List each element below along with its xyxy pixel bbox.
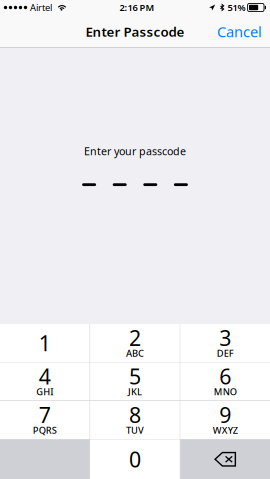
staticText: 0 (129, 445, 141, 473)
staticText: 5 (129, 362, 141, 390)
button[interactable]: 1 (0, 324, 90, 362)
staticText: 9 (219, 401, 231, 429)
staticText: 2:16 PM (119, 1, 154, 14)
staticText: TUV (126, 424, 144, 436)
staticText: 4 (39, 362, 51, 390)
staticText: Enter Passcode (85, 23, 184, 40)
button[interactable]: 7 (0, 401, 90, 439)
staticText: 3 (219, 324, 231, 352)
staticText: Cancel (217, 22, 262, 41)
button[interactable]: 6 (180, 362, 270, 400)
button[interactable]: 3 (180, 324, 270, 362)
staticText: PQRS (33, 424, 57, 436)
staticText: 51% (228, 1, 246, 14)
button[interactable]: Delete (180, 439, 270, 479)
staticText: GHI (36, 385, 53, 398)
staticText: WXYZ (213, 424, 238, 436)
button[interactable]: Cancel (209, 15, 270, 48)
staticText: JKL (128, 385, 142, 398)
staticText: 8 (129, 401, 141, 429)
staticText: 1 (39, 329, 51, 357)
staticText: 2 (129, 324, 141, 352)
staticText: MNO (214, 385, 237, 398)
button[interactable]: 2 (90, 324, 180, 362)
button[interactable]: 5 (90, 362, 180, 400)
staticText: DEF (217, 347, 234, 359)
button[interactable]: 4 (0, 362, 90, 400)
button[interactable]: 9 (180, 401, 270, 439)
staticText: 7 (39, 401, 51, 429)
button[interactable]: 8 (90, 401, 180, 439)
staticText: 6 (219, 362, 231, 390)
button[interactable]: 0 (90, 439, 180, 479)
staticText: ABC (126, 347, 144, 359)
staticText: Enter your passcode (84, 144, 186, 158)
staticText: Airtel (30, 1, 52, 14)
